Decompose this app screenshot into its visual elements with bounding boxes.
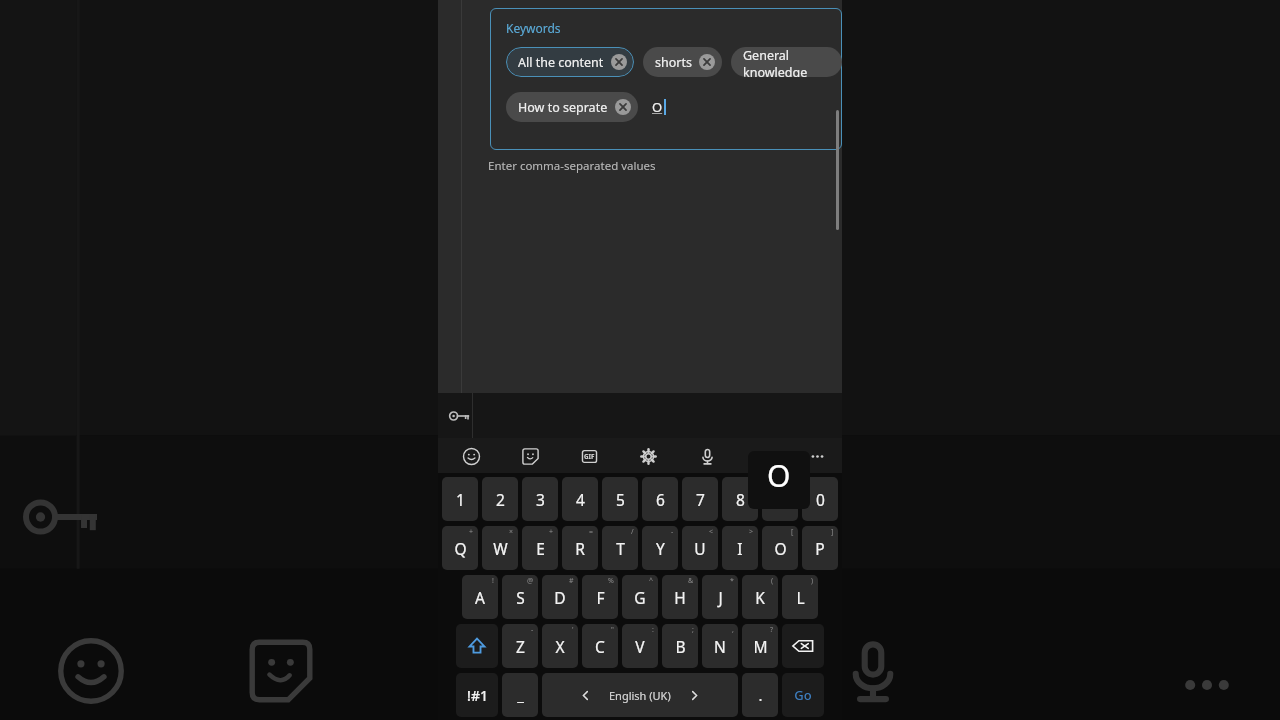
button[interactable]: 4 xyxy=(562,477,598,521)
staticText: , xyxy=(732,625,734,635)
staticText: ( xyxy=(771,576,774,586)
staticText: + xyxy=(469,527,474,537)
button[interactable]: I xyxy=(722,526,758,570)
button[interactable]: C xyxy=(582,624,618,668)
button[interactable]: More options xyxy=(802,441,832,471)
button[interactable]: Voice input xyxy=(692,441,722,471)
staticText: 9 xyxy=(776,489,785,510)
button[interactable]: Q xyxy=(442,526,478,570)
button[interactable]: . xyxy=(742,673,778,717)
button[interactable]: Z xyxy=(502,624,538,668)
staticText: !#1 xyxy=(467,686,488,705)
button[interactable]: _ xyxy=(502,673,538,717)
staticText: I xyxy=(737,538,743,559)
staticText: ? xyxy=(770,625,774,635)
button[interactable]: G xyxy=(622,575,658,619)
button[interactable]: Y xyxy=(642,526,678,570)
button[interactable]: 5 xyxy=(602,477,638,521)
staticText: ) xyxy=(811,576,814,586)
staticText: _ xyxy=(517,685,524,705)
staticText: H xyxy=(674,587,686,608)
button[interactable]: Emoji xyxy=(456,441,486,471)
staticText: E xyxy=(536,538,545,559)
button[interactable]: How to seprate xyxy=(506,92,638,122)
button[interactable]: D xyxy=(542,575,578,619)
button[interactable]: F xyxy=(582,575,618,619)
button[interactable]: Backspace xyxy=(782,624,824,668)
button[interactable]: H xyxy=(662,575,698,619)
button[interactable]: K xyxy=(742,575,778,619)
button[interactable]: B xyxy=(662,624,698,668)
button[interactable]: L xyxy=(782,575,818,619)
staticText: English (UK) xyxy=(609,688,671,703)
staticText: - xyxy=(531,625,534,635)
button[interactable]: 3 xyxy=(522,477,558,521)
staticText: / xyxy=(631,527,634,537)
staticText: M xyxy=(753,636,768,657)
staticText: ^ xyxy=(649,576,654,586)
button[interactable]: E xyxy=(522,526,558,570)
button[interactable]: T xyxy=(602,526,638,570)
staticText: 8 xyxy=(736,489,745,510)
button[interactable]: J xyxy=(702,575,738,619)
staticText: ; xyxy=(692,625,694,635)
staticText: U xyxy=(694,538,706,559)
button[interactable]: A xyxy=(462,575,498,619)
button[interactable]: 6 xyxy=(642,477,678,521)
staticText: Go xyxy=(794,686,812,704)
staticText: W xyxy=(493,538,508,559)
button[interactable]: R xyxy=(562,526,598,570)
staticText: V xyxy=(635,636,645,657)
button[interactable]: Remove shorts xyxy=(699,54,715,70)
button[interactable]: 9 xyxy=(762,477,798,521)
staticText: 6 xyxy=(656,489,665,510)
button[interactable]: shorts xyxy=(643,47,722,77)
staticText: How to seprate xyxy=(518,99,608,116)
staticText: 1 xyxy=(456,489,465,510)
staticText: L xyxy=(796,587,805,608)
staticText: - xyxy=(671,527,674,537)
button[interactable]: Remove All the content xyxy=(611,54,627,70)
staticText: O xyxy=(652,98,663,116)
staticText: Y xyxy=(656,538,665,559)
button[interactable] xyxy=(490,8,842,150)
button[interactable]: N xyxy=(702,624,738,668)
button[interactable]: Stickers xyxy=(515,441,545,471)
staticText: < xyxy=(709,527,714,537)
button[interactable]: O xyxy=(762,526,798,570)
staticText: C xyxy=(595,636,605,657)
staticText: Enter comma-separated values xyxy=(488,158,656,174)
button[interactable]: 7 xyxy=(682,477,718,521)
button[interactable]: 8 xyxy=(722,477,758,521)
staticText: GIF xyxy=(584,452,595,461)
button[interactable]: !#1 xyxy=(456,673,498,717)
button[interactable]: X xyxy=(542,624,578,668)
button[interactable]: General knowledge xyxy=(731,47,842,77)
button[interactable]: U xyxy=(682,526,718,570)
button[interactable]: P xyxy=(802,526,838,570)
button[interactable]: Go xyxy=(782,673,824,717)
button[interactable]: Remove How to seprate xyxy=(615,99,631,115)
button[interactable]: GIF xyxy=(574,441,604,471)
staticText: × xyxy=(509,527,514,537)
button[interactable]: Settings xyxy=(633,441,663,471)
button[interactable]: 0 xyxy=(802,477,838,521)
staticText: + xyxy=(549,527,554,537)
button[interactable]: 2 xyxy=(482,477,518,521)
button[interactable]: Space, English (UK) xyxy=(542,673,738,717)
staticText: A xyxy=(475,587,485,608)
button[interactable]: All the content xyxy=(506,47,634,77)
staticText: * xyxy=(730,576,734,586)
button[interactable]: M xyxy=(742,624,778,668)
button[interactable]: Shift xyxy=(456,624,498,668)
button[interactable]: S xyxy=(502,575,538,619)
staticText: R xyxy=(575,538,585,559)
staticText: 5 xyxy=(616,489,625,510)
button[interactable]: W xyxy=(482,526,518,570)
staticText: Keywords xyxy=(506,20,561,36)
button[interactable]: V xyxy=(622,624,658,668)
button[interactable]: 1 xyxy=(442,477,478,521)
staticText: ! xyxy=(492,576,494,586)
button[interactable]: Passwords xyxy=(448,410,470,422)
staticText: 4 xyxy=(576,489,585,510)
